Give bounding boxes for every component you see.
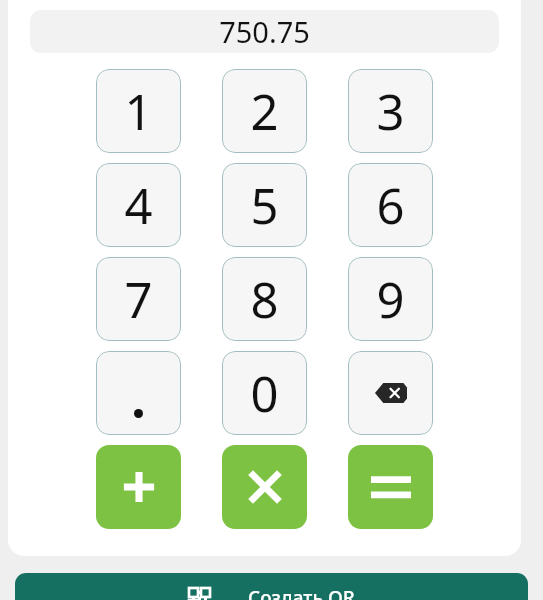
staticText: Создать QR xyxy=(248,585,355,600)
button[interactable]: Plus xyxy=(96,445,181,529)
button[interactable]: 5 xyxy=(222,163,307,247)
button[interactable]: 2 xyxy=(222,69,307,153)
button[interactable]: 3 xyxy=(348,69,433,153)
button[interactable]: 1 xyxy=(96,69,181,153)
button[interactable]: Equals xyxy=(348,445,433,529)
staticText: 9 xyxy=(376,266,405,333)
button[interactable]: 8 xyxy=(222,257,307,341)
staticText: 2 xyxy=(250,78,279,145)
button[interactable]: Создать QR xyxy=(15,573,528,600)
staticText: 3 xyxy=(376,78,405,145)
staticText: 8 xyxy=(250,266,279,333)
button[interactable]: Backspace xyxy=(348,351,433,435)
button[interactable]: Multiply xyxy=(222,445,307,529)
staticText: 750.75 xyxy=(219,12,310,51)
staticText: 7 xyxy=(124,266,153,333)
button[interactable]: 7 xyxy=(96,257,181,341)
button[interactable]: 6 xyxy=(348,163,433,247)
staticText: 0 xyxy=(250,360,279,427)
staticText: 6 xyxy=(376,172,405,239)
staticText: 1 xyxy=(124,78,153,145)
button[interactable]: 4 xyxy=(96,163,181,247)
button[interactable] xyxy=(96,351,181,435)
staticText: 4 xyxy=(124,172,153,239)
button[interactable]: 0 xyxy=(222,351,307,435)
button[interactable]: 750.75 xyxy=(30,10,499,53)
button[interactable]: 9 xyxy=(348,257,433,341)
staticText: 5 xyxy=(250,172,279,239)
